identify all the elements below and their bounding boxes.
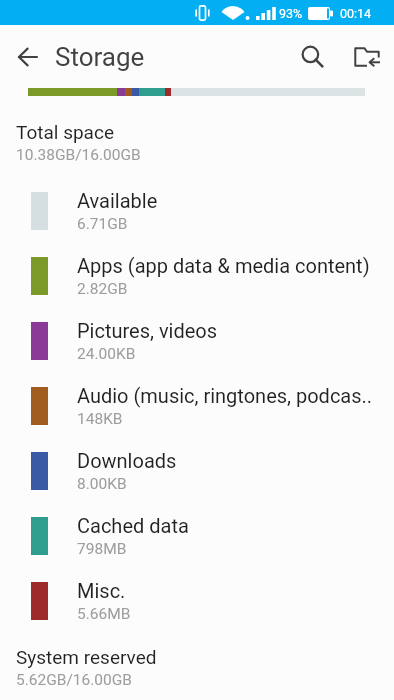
button[interactable]: Pictures, videos (0, 308, 394, 373)
staticText: 93% (279, 6, 303, 21)
staticText: 8.00KB (77, 475, 127, 493)
staticText: Cached data (77, 514, 189, 537)
staticText: Storage (55, 42, 145, 72)
staticText: 00:14 (340, 6, 372, 21)
staticText: System reserved (16, 646, 157, 668)
staticText: Audio (music, ringtones, podcas.. (77, 384, 373, 407)
staticText: Misc. (77, 579, 126, 602)
staticText: Total space (16, 121, 114, 143)
staticText: Pictures, videos (77, 319, 218, 342)
staticText: 10.38GB/16.00GB (16, 146, 141, 164)
button[interactable] (0, 25, 55, 88)
button[interactable] (345, 25, 389, 88)
button[interactable] (290, 25, 334, 88)
button[interactable]: Apps (app data & media content) (0, 243, 394, 308)
staticText: Available (77, 189, 158, 212)
staticText: 24.00KB (77, 345, 136, 363)
button[interactable]: Available (0, 178, 394, 243)
staticText: 5.62GB/16.00GB (16, 671, 132, 689)
staticText: 5.66MB (77, 605, 131, 623)
staticText: 798MB (77, 540, 127, 558)
button[interactable]: Cached data (0, 503, 394, 568)
button[interactable]: Audio (music, ringtones, podcas.. (0, 373, 394, 438)
button[interactable]: Downloads (0, 438, 394, 503)
staticText: Downloads (77, 449, 177, 472)
button[interactable]: Misc. (0, 568, 394, 633)
staticText: 148KB (77, 410, 123, 428)
staticText: Apps (app data & media content) (77, 254, 370, 277)
staticText: 2.82GB (77, 280, 128, 298)
staticText: 6.71GB (77, 215, 128, 233)
